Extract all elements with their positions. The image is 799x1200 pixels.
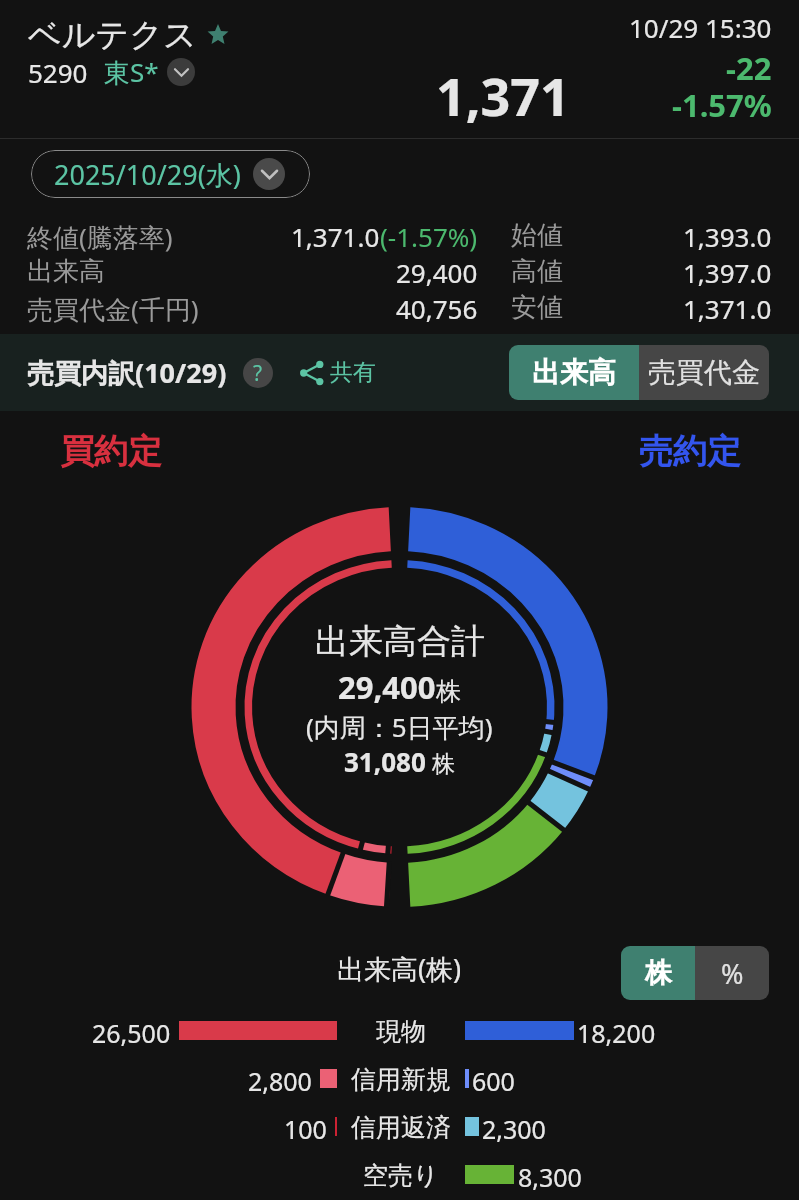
button[interactable]: 出来高: [509, 345, 639, 400]
staticText: 100: [284, 1112, 327, 1146]
staticText: 売買代金(千円): [27, 291, 199, 327]
staticText: 29,400: [338, 666, 436, 708]
staticText: 31,080: [344, 744, 426, 779]
staticText: 買約定: [60, 430, 162, 473]
staticText: 8,300: [518, 1160, 582, 1194]
staticText: 出来高(株): [337, 950, 462, 987]
button[interactable]: [0, 1055, 799, 1103]
staticText: 出来高合計: [315, 620, 485, 663]
button[interactable]: Help: [243, 358, 273, 388]
staticText: -1.57%: [672, 84, 772, 126]
button[interactable]: [0, 1103, 799, 1151]
staticText: 1,371.0: [291, 219, 380, 254]
staticText: 共有: [330, 358, 376, 387]
staticText: 2,800: [248, 1064, 312, 1098]
staticText: 5290: [28, 55, 88, 90]
staticText: %: [721, 955, 744, 992]
button[interactable]: ベルテクス: [28, 14, 229, 56]
staticText: (-1.57%): [380, 219, 478, 254]
staticText: 終値(騰落率): [27, 219, 173, 255]
staticText: 売買内訳(10/29): [27, 354, 227, 391]
staticText: 1,371.0: [683, 291, 772, 326]
button[interactable]: 株: [621, 946, 695, 1000]
button[interactable]: [0, 1007, 799, 1055]
staticText: 信用新規: [351, 1064, 451, 1095]
staticText: 出来高: [27, 255, 105, 288]
staticText: 現物: [376, 1016, 426, 1047]
staticText: 1,371: [436, 60, 570, 131]
button[interactable]: %: [695, 946, 769, 1000]
staticText: 東S*: [104, 54, 159, 90]
staticText: -22: [726, 47, 772, 89]
staticText: 株: [426, 747, 455, 778]
other: Share: [299, 360, 325, 386]
staticText: 出来高: [532, 355, 616, 390]
staticText: 株: [645, 956, 672, 990]
staticText: 高値: [511, 255, 563, 288]
staticText: 1,393.0: [683, 219, 772, 254]
staticText: 2,300: [482, 1112, 546, 1146]
button[interactable]: 売買代金: [639, 345, 769, 400]
staticText: ?: [253, 359, 263, 388]
staticText: 18,200: [577, 1016, 656, 1050]
button[interactable]: 2025/10/29(水): [31, 150, 310, 198]
staticText: 10/29 15:30: [629, 10, 772, 45]
staticText: 1,397.0: [683, 255, 772, 290]
button[interactable]: [0, 1151, 799, 1199]
staticText: 空売り: [363, 1160, 439, 1191]
staticText: 600: [472, 1064, 515, 1098]
staticText: 安値: [511, 291, 563, 324]
staticText: ベルテクス: [28, 14, 197, 56]
staticText: 29,400: [396, 255, 478, 290]
staticText: 2025/10/29(水): [54, 156, 241, 193]
button[interactable]: Expand market: [167, 58, 195, 86]
staticText: (内周：5日平均): [306, 709, 493, 745]
staticText: 40,756: [396, 291, 478, 326]
button[interactable]: Favorite: [207, 24, 229, 46]
button[interactable]: 5290: [28, 54, 195, 90]
staticText: 売約定: [639, 430, 741, 473]
staticText: 始値: [511, 219, 563, 252]
staticText: 売買代金: [648, 355, 760, 390]
staticText: 26,500: [92, 1016, 171, 1050]
button[interactable]: Share: [295, 354, 380, 391]
staticText: 株: [436, 676, 461, 707]
staticText: 信用返済: [351, 1112, 451, 1143]
